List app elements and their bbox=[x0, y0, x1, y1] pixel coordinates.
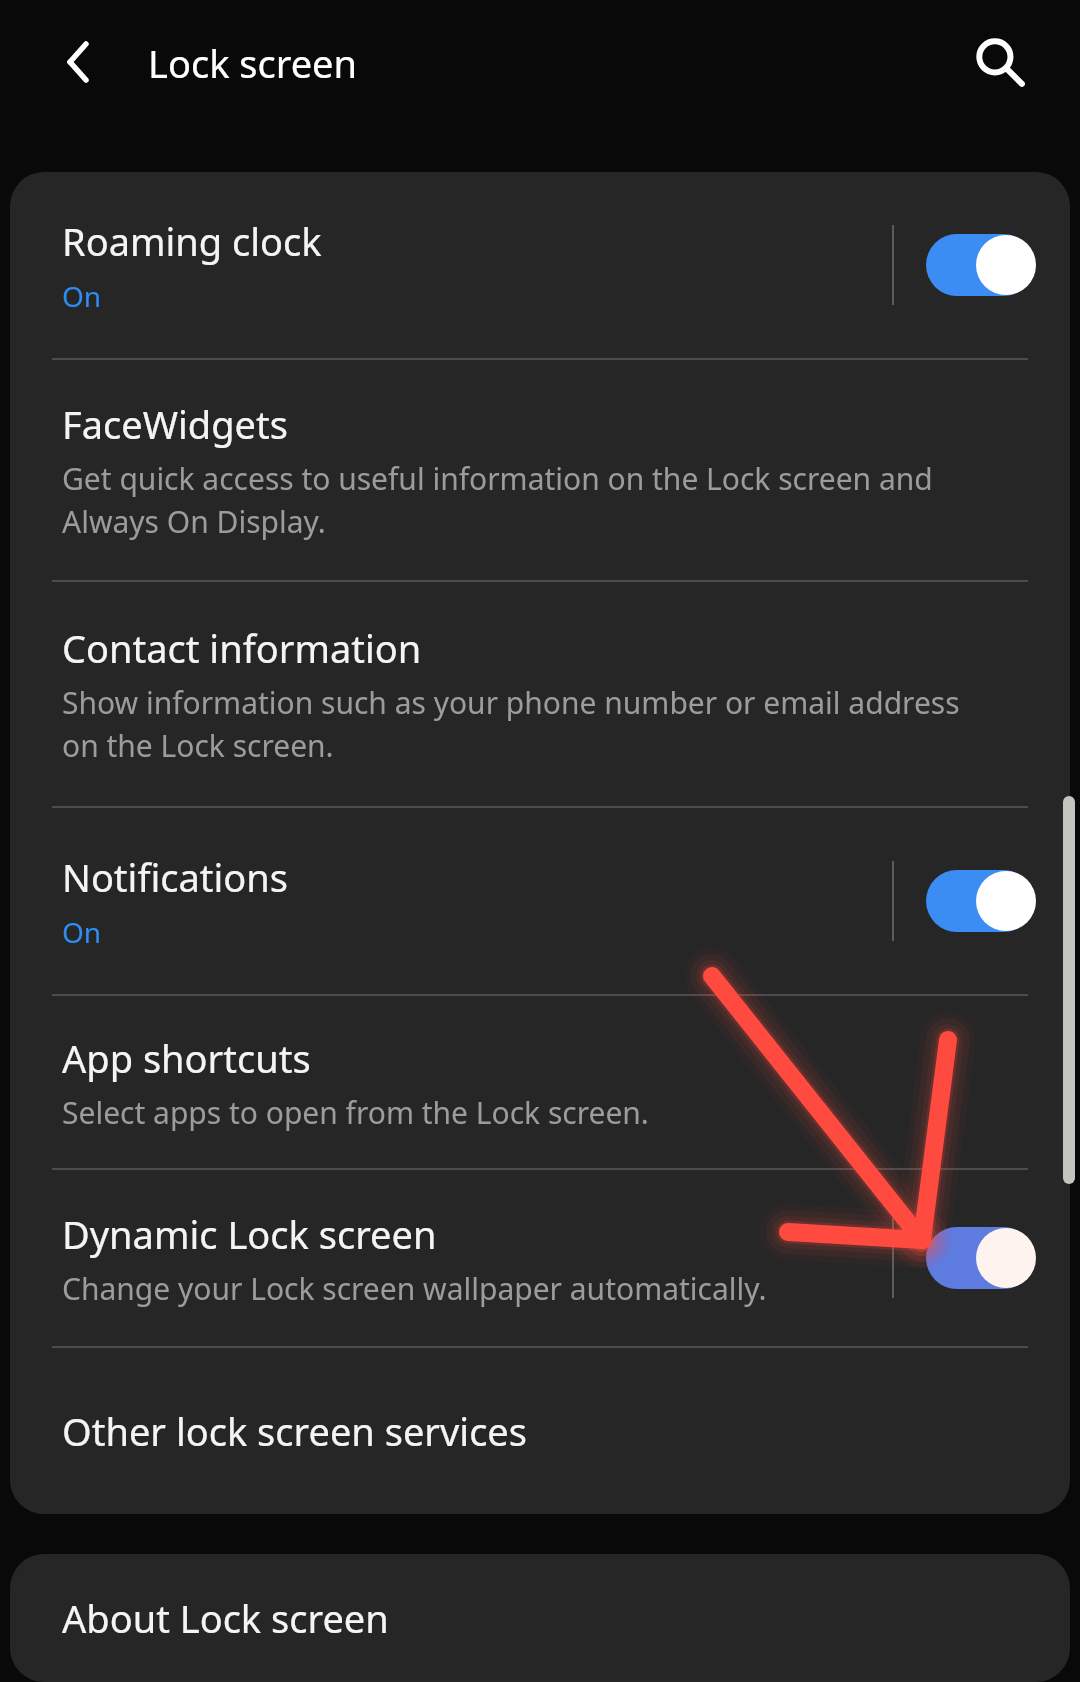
staticText: Dynamic Lock screen bbox=[62, 1208, 437, 1260]
button[interactable]: Search bbox=[958, 22, 1038, 102]
button[interactable]: About Lock screen bbox=[10, 1554, 1070, 1682]
button[interactable]: Roaming clock bbox=[10, 172, 1070, 358]
button[interactable]: Notifications switch bbox=[926, 870, 1034, 932]
button[interactable]: Dynamic Lock screen switch bbox=[926, 1227, 1034, 1289]
staticText: FaceWidgets bbox=[62, 398, 288, 450]
button[interactable]: Dynamic Lock screen bbox=[10, 1170, 1070, 1346]
staticText: On bbox=[62, 277, 102, 315]
staticText: App shortcuts bbox=[62, 1032, 311, 1084]
button[interactable]: Other lock screen services bbox=[10, 1348, 1070, 1514]
button[interactable]: Roaming clock switch bbox=[926, 234, 1034, 296]
staticText: Notifications bbox=[62, 851, 289, 903]
staticText: About Lock screen bbox=[62, 1592, 389, 1644]
button[interactable]: FaceWidgets bbox=[10, 360, 1070, 580]
staticText: Contact information bbox=[62, 622, 422, 674]
staticText: Select apps to open from the Lock screen… bbox=[62, 1092, 649, 1133]
button[interactable]: Contact information bbox=[10, 582, 1070, 806]
staticText: Roaming clock bbox=[62, 215, 322, 267]
button[interactable]: Notifications bbox=[10, 808, 1070, 994]
staticText: Change your Lock screen wallpaper automa… bbox=[62, 1268, 767, 1309]
staticText: On bbox=[62, 913, 102, 951]
staticText: Other lock screen services bbox=[62, 1405, 528, 1457]
staticText: Get quick access to useful information o… bbox=[62, 458, 933, 542]
button[interactable]: Back bbox=[44, 26, 116, 98]
staticText: Lock screen bbox=[148, 37, 358, 89]
staticText: Show information such as your phone numb… bbox=[62, 682, 960, 766]
button[interactable]: App shortcuts bbox=[10, 996, 1070, 1168]
